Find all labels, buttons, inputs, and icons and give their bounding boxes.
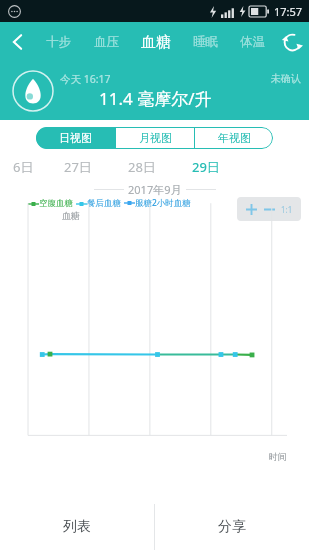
button[interactable]: 返回 [0, 22, 34, 62]
staticText: 体温 [240, 34, 265, 50]
staticText: 27日 [64, 158, 92, 176]
staticText: 血压 [94, 34, 119, 50]
staticText: 11.4 毫摩尔/升 [99, 87, 212, 110]
staticText: 29日 [192, 158, 220, 176]
button[interactable]: 28日 [110, 157, 174, 177]
button[interactable]: 分享 [155, 504, 309, 550]
button[interactable]: 29日 [174, 157, 238, 177]
button[interactable]: 睡眠 [181, 22, 229, 62]
button[interactable]: 放大 [242, 200, 260, 218]
button[interactable]: 血糖 [130, 22, 181, 62]
staticText: 6日 [13, 158, 34, 176]
button[interactable]: 列表 [0, 504, 154, 550]
staticText: 睡眠 [193, 34, 218, 50]
staticText: 时间 [269, 451, 287, 462]
staticText: 列表 [63, 518, 91, 536]
staticText: 血糖 [141, 33, 171, 52]
staticText: 空腹血糖 [39, 198, 73, 209]
button[interactable]: 27日 [46, 157, 110, 177]
button[interactable]: 月视图 [116, 127, 194, 149]
staticText: 17:57 [274, 4, 303, 19]
staticText: 28日 [128, 158, 156, 176]
button[interactable]: 1:1 [278, 200, 296, 218]
staticText: 1:1 [281, 204, 293, 215]
staticText: 年视图 [218, 131, 251, 145]
button[interactable]: 日视图 [36, 127, 115, 149]
button[interactable]: 血压 [82, 22, 130, 62]
button[interactable]: 体温 [229, 22, 275, 62]
button[interactable]: 十步 [34, 22, 82, 62]
staticText: 未确认 [271, 72, 301, 85]
staticText: 餐后血糖 [87, 198, 121, 209]
button[interactable]: 刷新 [275, 22, 309, 62]
staticText: 血糖 [62, 210, 80, 221]
staticText: 月视图 [139, 131, 172, 145]
button[interactable]: 6日 [0, 157, 46, 177]
staticText: 日视图 [59, 131, 92, 145]
button[interactable]: 缩小 [260, 200, 278, 218]
staticText: 2017年9月 [128, 182, 182, 197]
staticText: 今天 16:17 [60, 72, 111, 86]
staticText: 服糖2小时血糖 [135, 197, 191, 209]
staticText: 分享 [218, 518, 246, 536]
staticText: 十步 [46, 34, 71, 50]
button[interactable]: 年视图 [195, 127, 273, 149]
